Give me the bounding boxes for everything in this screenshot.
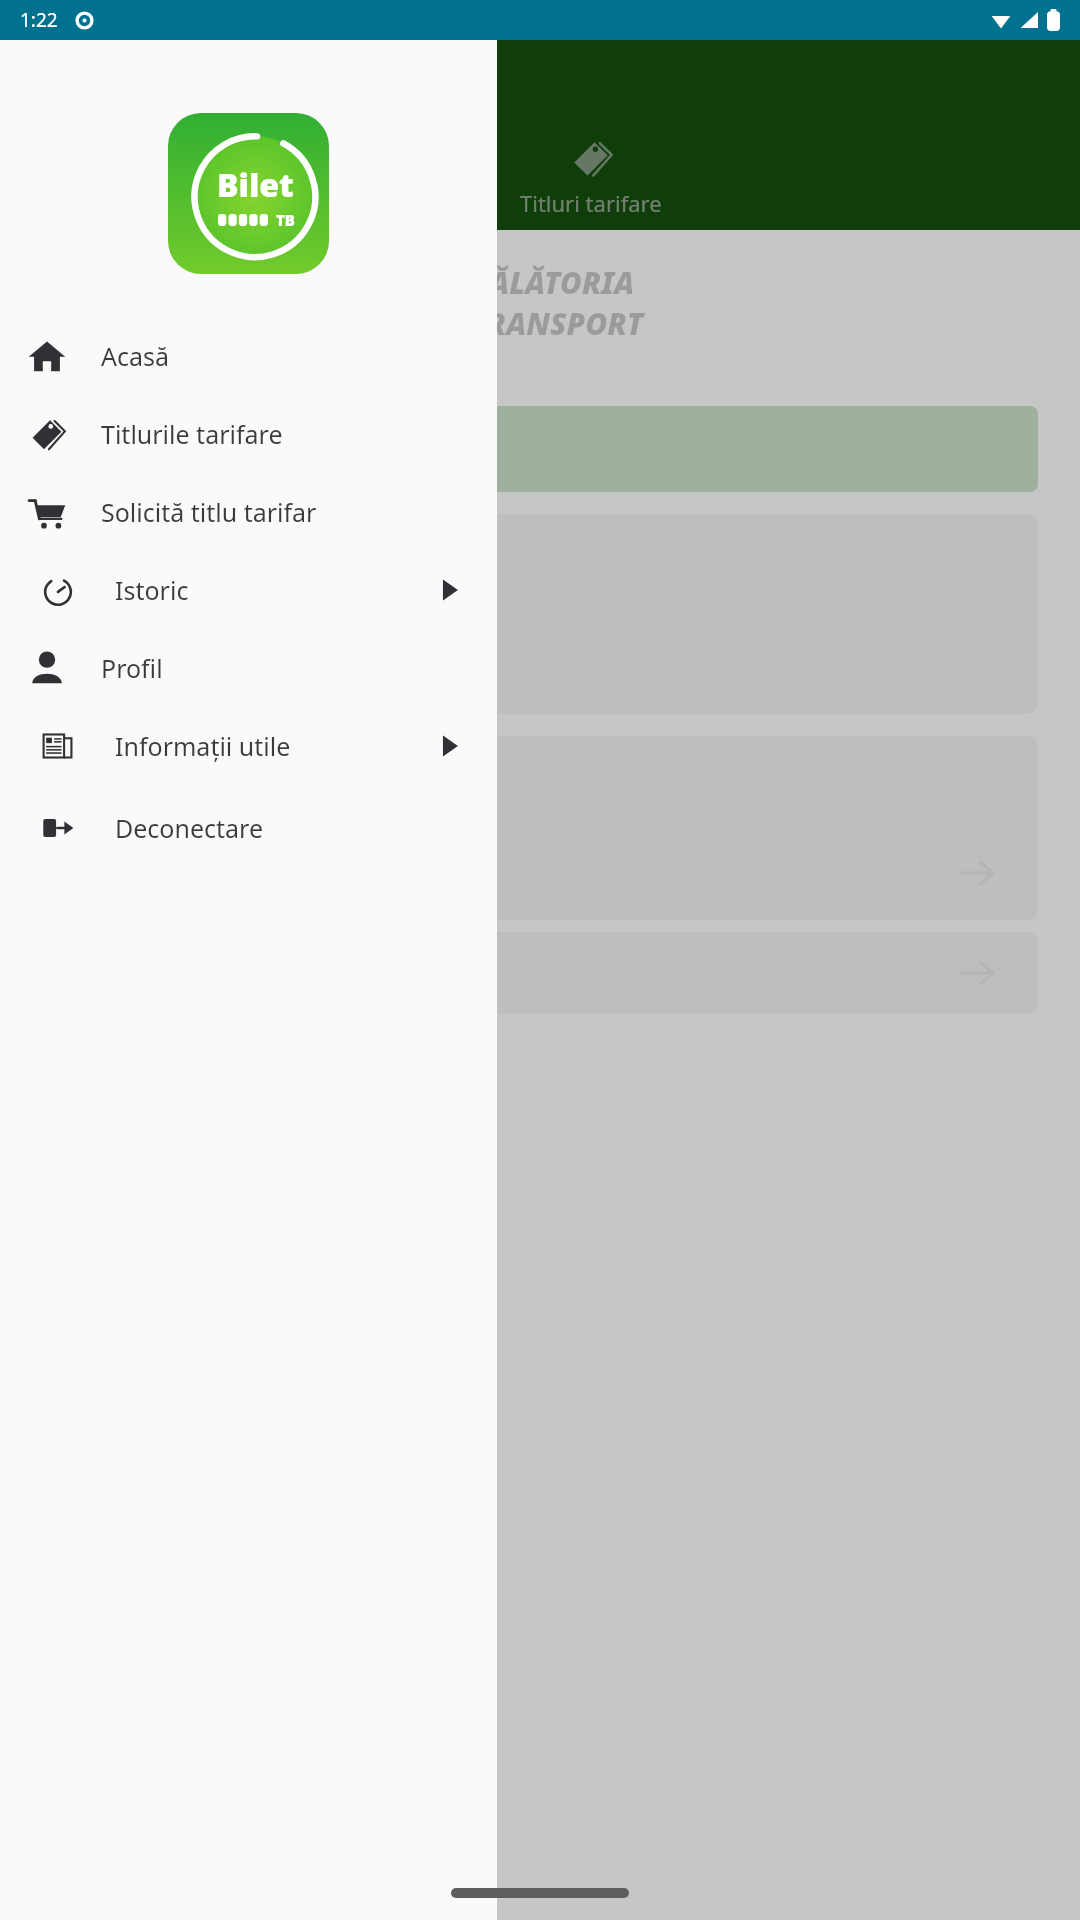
staticText: Titlurile tarifare xyxy=(101,417,283,451)
button[interactable]: Informații utile xyxy=(0,707,497,785)
other: Notification xyxy=(75,11,94,30)
button[interactable]: Acasă xyxy=(0,317,497,395)
button[interactable]: Profil xyxy=(0,629,497,707)
button[interactable]: Bilet app logo xyxy=(168,113,329,274)
staticText: 1:22 xyxy=(20,7,58,33)
staticText: CĂLĂTORIA xyxy=(470,262,635,303)
other: Open xyxy=(958,854,996,892)
button[interactable] xyxy=(42,406,1038,492)
button[interactable]: Deconectare xyxy=(0,789,497,867)
staticText: Solicită titlu tarifar xyxy=(101,495,317,529)
button[interactable]: Istoric xyxy=(0,551,497,629)
button[interactable]: Titlurile tarifare xyxy=(0,395,497,473)
button[interactable] xyxy=(42,514,1038,714)
button[interactable]: Open xyxy=(42,736,1038,920)
staticText: Deconectare xyxy=(115,811,264,845)
staticText: Profil xyxy=(101,651,163,685)
staticText: Informații utile xyxy=(115,729,291,763)
staticText: Acasă xyxy=(101,339,170,373)
staticText: Titluri tarifare xyxy=(520,188,662,218)
staticText: TRANSPORT xyxy=(470,303,644,344)
staticText: Istoric xyxy=(115,573,189,607)
staticText: Bilet xyxy=(217,163,294,207)
staticText: TB xyxy=(276,210,295,230)
button[interactable]: Solicită titlu tarifar xyxy=(0,473,497,551)
button[interactable]: Open xyxy=(42,932,1038,1014)
other: Open xyxy=(958,954,996,992)
